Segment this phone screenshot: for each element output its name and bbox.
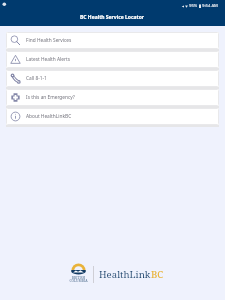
button[interactable]: Latest Health Alerts — [6, 51, 219, 68]
staticText: Call 8-1-1 — [26, 75, 47, 82]
staticText: HealthLink — [99, 268, 151, 281]
button[interactable]: Is this an Emergency? — [6, 89, 219, 106]
staticText: Is this an Emergency? — [26, 94, 75, 101]
staticText: 9:54 AM — [202, 3, 218, 9]
staticText: About HealthLinkBC — [26, 113, 72, 120]
button[interactable]: About HealthLinkBC — [6, 108, 219, 125]
staticText: BRITISH COLUMBIA — [69, 275, 88, 283]
button[interactable]: Call 8-1-1 — [6, 70, 219, 87]
staticText: BC — [151, 268, 164, 281]
staticText: Find Health Services — [26, 37, 72, 44]
staticText: 95% — [189, 3, 198, 9]
staticText: Latest Health Alerts — [26, 56, 71, 63]
button[interactable]: Find Health Services — [6, 32, 219, 49]
staticText: BC Health Service Locator — [80, 14, 145, 21]
